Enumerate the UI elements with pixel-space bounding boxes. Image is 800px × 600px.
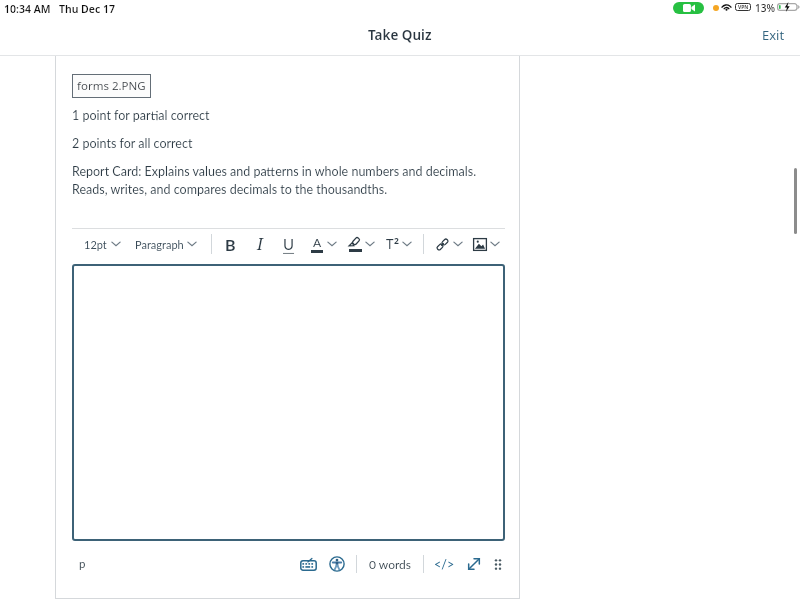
staticText: VPN (738, 4, 749, 11)
staticText: 0 words (369, 557, 411, 571)
staticText: I (257, 233, 263, 255)
button[interactable]: Bold (217, 230, 243, 258)
button[interactable]: Paragraph (130, 230, 190, 258)
button[interactable]: Insert link (432, 230, 452, 258)
staticText: T (386, 235, 394, 253)
staticText: Reads, writes, and compares decimals to … (72, 182, 388, 197)
staticText: 13% (755, 1, 775, 15)
button[interactable]: Image options (489, 230, 501, 258)
staticText: Take Quiz (368, 26, 432, 44)
staticText: B (225, 235, 236, 254)
staticText: 10:34 AM (4, 2, 51, 16)
button[interactable]: p (79, 550, 97, 578)
staticText: 12pt (84, 238, 107, 251)
button[interactable]: Text colour (307, 230, 327, 258)
staticText: U (283, 235, 295, 253)
button[interactable]: Exit (750, 19, 800, 51)
button[interactable]: Highlight colour options (364, 230, 376, 258)
button[interactable]: Underline (276, 230, 302, 258)
button[interactable]: More options (489, 550, 507, 578)
button[interactable]: 12pt (79, 230, 121, 258)
staticText: Thu Dec 17 (59, 2, 115, 16)
button[interactable]: Paragraph style options (186, 230, 198, 258)
staticText: 2 (394, 235, 399, 247)
staticText: p (79, 557, 86, 571)
button[interactable]: Font size options (110, 230, 122, 258)
button[interactable]: Keyboard shortcuts (297, 550, 319, 578)
staticText: 2 points for all correct (72, 136, 193, 151)
staticText: A (313, 235, 322, 249)
staticText: Report Card: Explains values and pattern… (72, 164, 477, 179)
button[interactable]: Highlight colour (345, 230, 365, 258)
button[interactable]: Accessibility checker (326, 550, 348, 578)
button[interactable]: HTML editor (431, 550, 457, 578)
button[interactable]: Italic (247, 230, 273, 258)
button[interactable]: Resize editor (463, 550, 485, 578)
staticText: 1 point for partial correct (72, 108, 210, 123)
staticText: forms 2.PNG (77, 78, 146, 94)
button[interactable]: Superscript (381, 230, 403, 258)
staticText: Paragraph (135, 238, 184, 251)
button[interactable]: Link options (452, 230, 464, 258)
button[interactable]: Insert image (470, 230, 490, 258)
button[interactable]: Text colour options (326, 230, 338, 258)
staticText: </> (434, 557, 455, 572)
button[interactable]: Superscript options (401, 230, 413, 258)
staticText: Exit (762, 26, 785, 44)
